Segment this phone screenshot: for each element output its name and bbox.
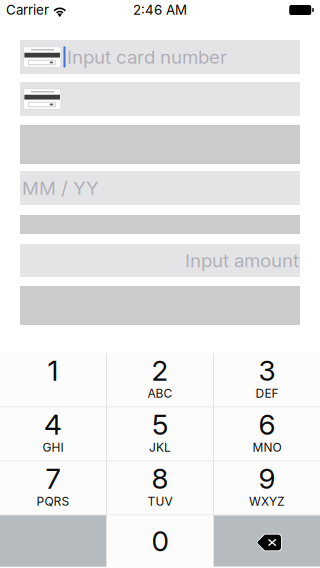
staticText: ABC <box>147 386 172 401</box>
staticText: Input card number <box>67 46 227 68</box>
staticText: 4 <box>44 408 62 441</box>
staticText: MM / YY <box>22 177 99 199</box>
button[interactable]: 9 <box>214 461 320 514</box>
staticText: 6 <box>258 408 275 441</box>
button[interactable] <box>20 82 300 116</box>
staticText: Carrier <box>6 2 49 18</box>
staticText: 3 <box>258 354 275 387</box>
button[interactable]: MM / YY <box>20 171 300 205</box>
staticText: JKL <box>149 440 171 455</box>
button[interactable]: 7 <box>0 461 106 514</box>
staticText: TUV <box>147 494 172 509</box>
staticText: MNO <box>252 440 281 455</box>
staticText: DEF <box>255 386 278 401</box>
staticText: 8 <box>151 462 168 495</box>
staticText: 5 <box>152 408 168 441</box>
button[interactable]: 8 <box>107 461 213 514</box>
staticText: WXYZ <box>249 494 285 509</box>
button[interactable]: 5 <box>107 407 213 460</box>
staticText: GHI <box>42 440 63 455</box>
staticText: 2 <box>151 354 168 387</box>
staticText: 0 <box>151 524 168 558</box>
button[interactable]: 2 <box>107 353 213 406</box>
button[interactable]: 3 <box>214 353 320 406</box>
staticText: 1 <box>47 354 58 387</box>
staticText: 7 <box>45 462 60 495</box>
button[interactable]: 1 <box>0 353 106 406</box>
button[interactable]: Input amount <box>20 244 300 277</box>
button[interactable]: 0 <box>107 515 213 566</box>
button[interactable]: 4 <box>0 407 106 460</box>
button[interactable]: Delete <box>214 515 320 566</box>
staticText: PQRS <box>36 494 69 509</box>
staticText: Input amount <box>185 249 299 272</box>
button[interactable]: 6 <box>214 407 320 460</box>
staticText: 9 <box>258 462 275 495</box>
staticText: 2:46 AM <box>133 2 187 18</box>
button[interactable]: Input card number <box>20 40 300 74</box>
